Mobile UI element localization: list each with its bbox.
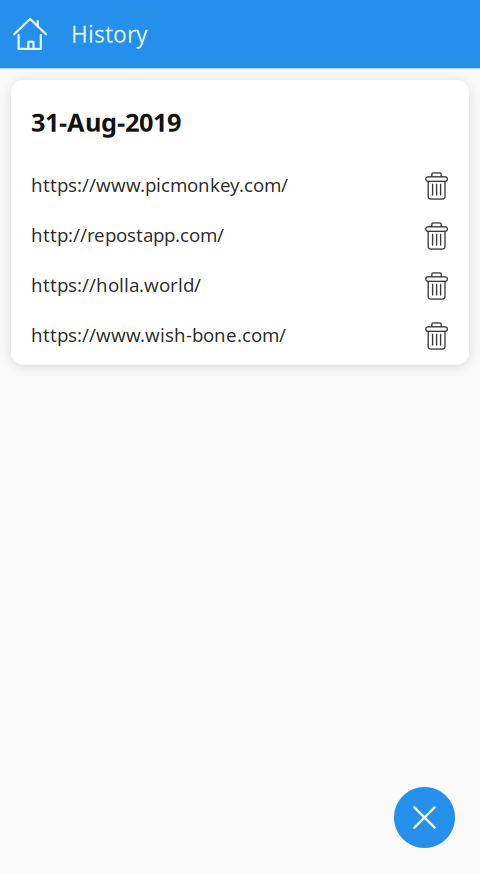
staticText: http://repostapp.com/ [31,222,224,247]
button[interactable]: Delete [402,261,448,308]
staticText: 31-Aug-2019 [31,105,181,139]
button[interactable]: https://www.wish-bone.com/ [31,307,286,362]
button[interactable]: Close [394,787,455,848]
staticText: https://www.wish-bone.com/ [31,322,286,347]
button[interactable]: Home [0,17,71,50]
button[interactable]: Delete [402,311,448,358]
button[interactable]: https://www.picmonkey.com/ [31,157,288,212]
button[interactable]: https://holla.world/ [31,257,201,312]
button[interactable]: Delete [402,161,448,208]
button[interactable]: Delete [402,211,448,258]
staticText: https://www.picmonkey.com/ [31,172,288,197]
staticText: History [71,19,148,49]
staticText: https://holla.world/ [31,272,201,297]
button[interactable]: http://repostapp.com/ [31,207,224,262]
